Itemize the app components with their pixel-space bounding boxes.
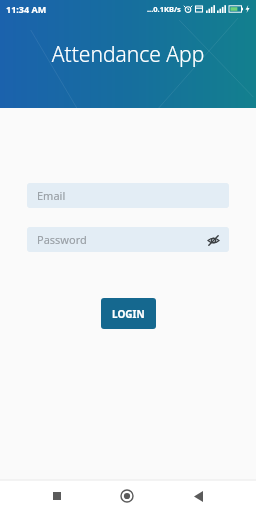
- button[interactable]: Home: [114, 483, 140, 509]
- button[interactable]: Email: [27, 183, 229, 208]
- button[interactable]: Recent apps: [44, 483, 70, 509]
- button[interactable]: LOGIN: [101, 298, 156, 329]
- button[interactable]: Show password: [204, 231, 222, 249]
- staticText: Password: [37, 232, 87, 247]
- staticText: 11:34 AM: [6, 3, 47, 15]
- staticText: ...0.1KB/s: [147, 4, 181, 14]
- button[interactable]: Back: [185, 483, 211, 509]
- button[interactable]: Password: [27, 227, 229, 252]
- staticText: Email: [37, 188, 66, 203]
- staticText: Attendance App: [0, 40, 256, 69]
- staticText: LOGIN: [112, 307, 145, 321]
